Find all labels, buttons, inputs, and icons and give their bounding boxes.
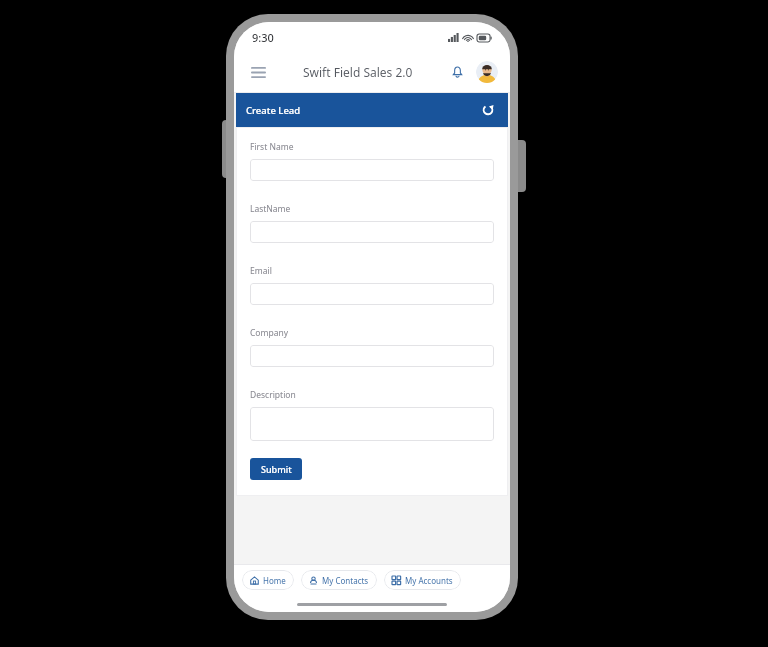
button[interactable] bbox=[250, 283, 494, 305]
staticText: Company bbox=[250, 327, 289, 339]
staticText: My Accounts bbox=[405, 575, 453, 586]
staticText: 9:30 bbox=[252, 30, 274, 45]
staticText: Swift Field Sales 2.0 bbox=[303, 64, 413, 80]
button[interactable]: Notifications bbox=[444, 59, 470, 85]
button[interactable]: Create Lead bbox=[236, 93, 508, 127]
staticText: Email bbox=[250, 265, 272, 277]
button[interactable]: Refresh bbox=[478, 100, 498, 120]
staticText: First Name bbox=[250, 141, 294, 153]
staticText: Create Lead bbox=[246, 104, 301, 117]
button[interactable]: Open navigation menu bbox=[244, 58, 272, 86]
button[interactable]: Submit bbox=[250, 458, 302, 480]
button[interactable]: My Contacts bbox=[301, 570, 377, 590]
button[interactable] bbox=[250, 221, 494, 243]
button[interactable]: Profile bbox=[476, 61, 498, 83]
button[interactable]: My Accounts bbox=[384, 570, 461, 590]
staticText: LastName bbox=[250, 203, 291, 215]
staticText: Description bbox=[250, 389, 296, 401]
button[interactable] bbox=[250, 345, 494, 367]
staticText: Home bbox=[263, 575, 286, 586]
button[interactable]: Home bbox=[242, 570, 294, 590]
staticText: My Contacts bbox=[322, 575, 369, 586]
staticText: Submit bbox=[261, 463, 292, 475]
button[interactable] bbox=[250, 407, 494, 441]
button[interactable] bbox=[250, 159, 494, 181]
